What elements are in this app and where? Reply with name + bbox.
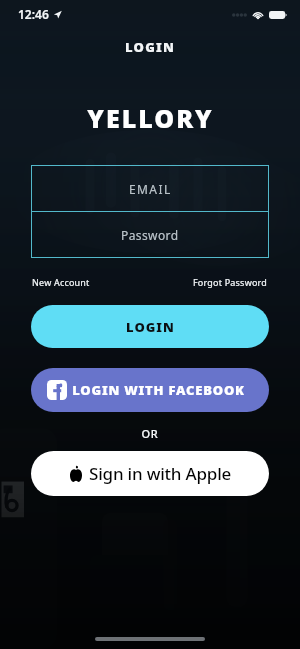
staticText: Password	[121, 227, 179, 243]
staticText: LOGIN	[126, 318, 175, 336]
button[interactable]: LOGIN WITH FACEBOOK	[31, 368, 269, 412]
staticText: 12:46	[18, 6, 49, 22]
staticText: New Account	[32, 276, 90, 288]
button[interactable]: New Account	[30, 273, 92, 291]
button[interactable]: LOGIN	[31, 305, 269, 348]
button[interactable]: Password	[31, 211, 269, 258]
button[interactable]: Forgot Password	[191, 273, 270, 291]
staticText: EMAIL	[129, 181, 172, 197]
button[interactable]: EMAIL	[31, 165, 269, 212]
staticText: LOGIN	[125, 38, 175, 56]
staticText: OR	[141, 426, 159, 441]
staticText: Sign in with Apple	[89, 462, 232, 485]
staticText: LOGIN WITH FACEBOOK	[72, 381, 245, 399]
staticText: Forgot Password	[193, 276, 268, 288]
button[interactable]: Sign in with Apple	[31, 451, 269, 496]
staticText: YELLORY	[87, 101, 214, 135]
